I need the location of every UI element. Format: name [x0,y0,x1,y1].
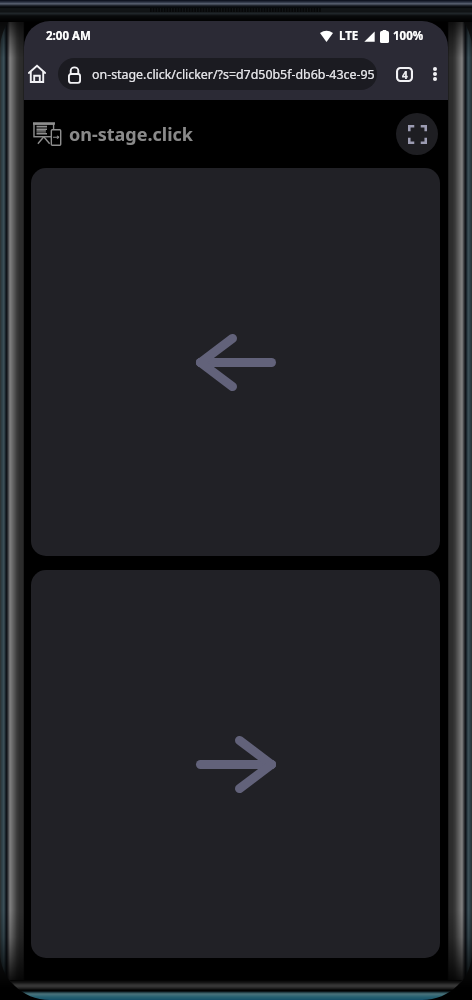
button[interactable]: Previous [31,168,440,556]
button[interactable]: on-stage.click/clicker/?s=d7d50b5f-db6b-… [58,58,377,90]
button[interactable]: Tabs [384,55,424,93]
staticText: on-stage.click/clicker/?s=d7d50b5f-db6b-… [92,66,375,83]
button[interactable]: Home [24,53,50,94]
staticText: 4 [402,68,408,82]
staticText: LTE [339,28,359,44]
button[interactable]: Next [31,570,440,958]
button[interactable]: Fullscreen [396,113,438,155]
staticText: 100% [393,28,424,44]
staticText: 2:00 AM [46,28,91,44]
staticText: on-stage.click [69,122,194,147]
button[interactable]: More options [422,55,448,93]
